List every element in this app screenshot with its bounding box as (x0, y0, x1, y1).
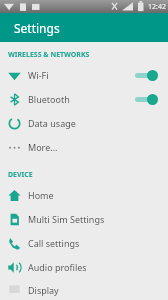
staticText: Audio profiles (28, 261, 168, 273)
button[interactable]: Wi-Fi (0, 63, 168, 87)
button[interactable]: More... (0, 135, 168, 159)
staticText: WIRELESS & NETWORKS (8, 50, 90, 60)
button[interactable]: Toggle Bluetooth (133, 92, 158, 106)
button[interactable]: Toggle Wi-Fi (133, 68, 158, 82)
staticText: DEVICE (8, 170, 33, 180)
staticText: 12:42 (148, 2, 166, 12)
staticText: Wi-Fi (28, 69, 133, 81)
button[interactable]: Audio profiles (0, 255, 168, 279)
staticText: Multi Sim Settings (28, 213, 168, 225)
staticText: Settings (14, 20, 60, 36)
staticText: Display (28, 284, 168, 296)
button[interactable]: Multi Sim Settings (0, 207, 168, 231)
button[interactable]: Home (0, 183, 168, 207)
button[interactable]: Call settings (0, 231, 168, 255)
staticText: Home (28, 189, 168, 201)
staticText: Call settings (28, 237, 168, 249)
button[interactable]: Data usage (0, 111, 168, 135)
staticText: Data usage (28, 117, 168, 129)
staticText: Bluetooth (28, 93, 133, 105)
button[interactable]: Display (0, 279, 168, 300)
button[interactable]: Bluetooth (0, 87, 168, 111)
staticText: More... (28, 141, 168, 153)
